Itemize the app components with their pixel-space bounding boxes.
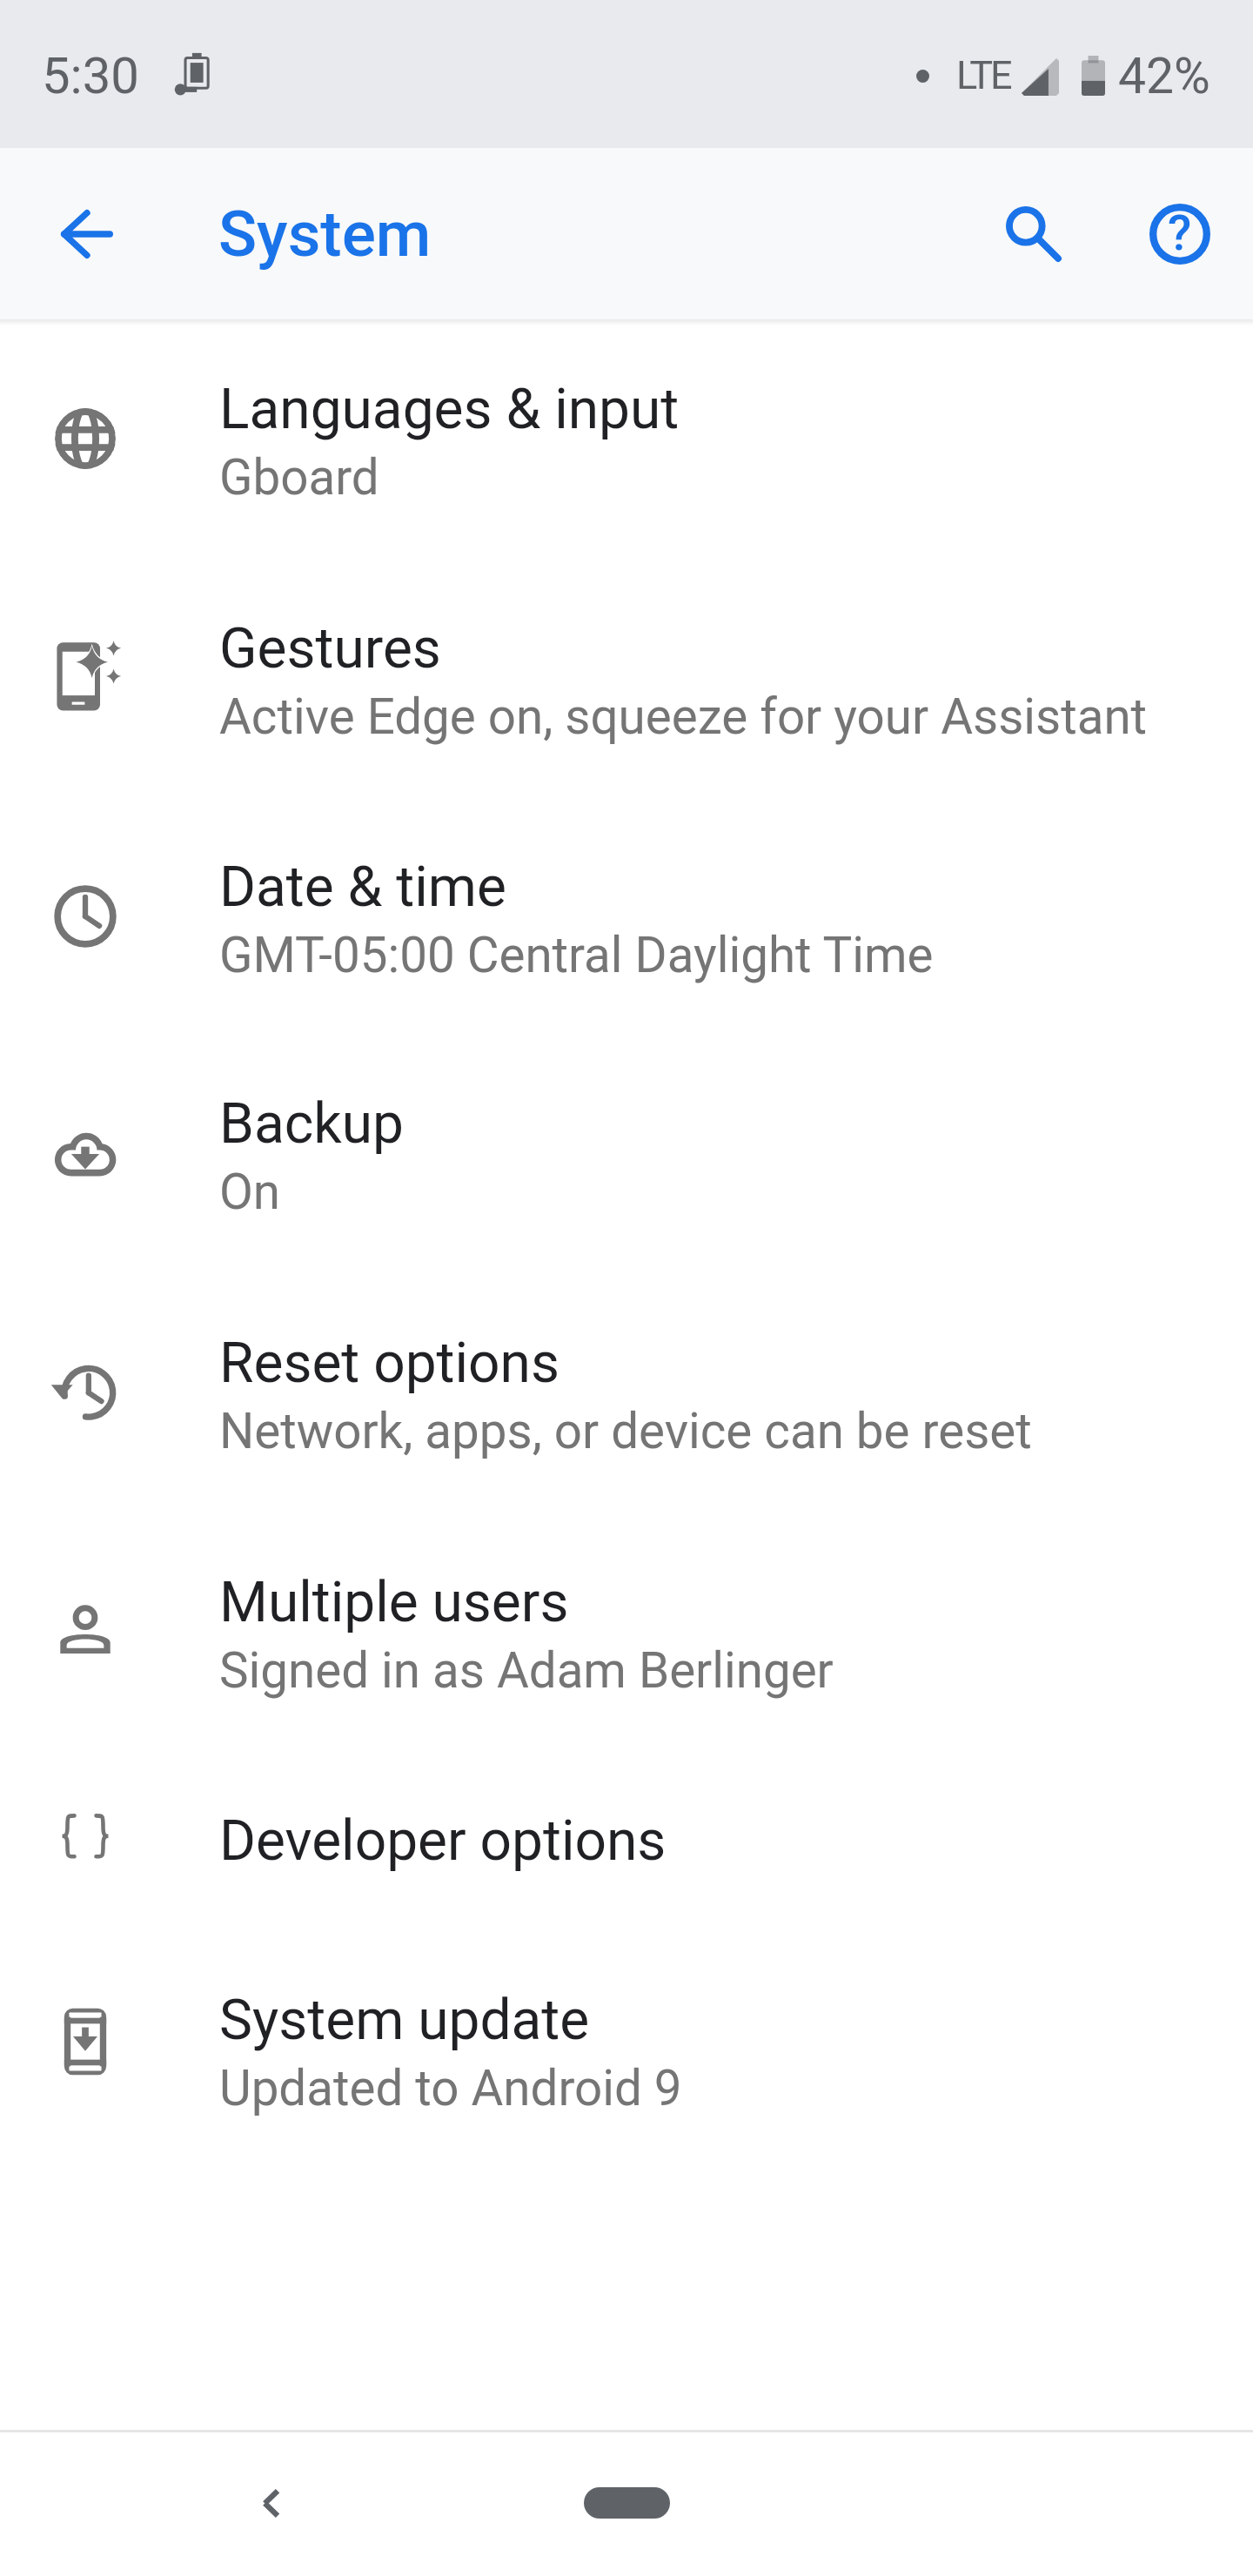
button[interactable]: Home: [548, 2457, 705, 2553]
staticText: ?: [1168, 205, 1192, 262]
button[interactable]: Backup: [0, 1034, 1253, 1273]
staticText: Date & time: [219, 855, 506, 920]
button[interactable]: Gestures: [0, 559, 1253, 797]
button[interactable]: Languages & input: [0, 319, 1253, 559]
button[interactable]: Multiple users: [0, 1513, 1253, 1751]
button[interactable]: Help: [1116, 171, 1243, 298]
staticText: Gestures: [219, 616, 441, 681]
staticText: Gboard: [219, 449, 379, 506]
staticText: System: [218, 197, 432, 272]
staticText: Signed in as Adam Berlinger: [219, 1642, 834, 1700]
staticText: Developer options: [219, 1808, 667, 1874]
staticText: Updated to Android 9: [219, 2060, 682, 2117]
button[interactable]: Reset options: [0, 1273, 1253, 1513]
staticText: GMT-05:00 Central Daylight Time: [219, 927, 934, 984]
staticText: System update: [219, 1988, 590, 2053]
staticText: Languages & input: [219, 377, 680, 442]
button[interactable]: Search: [970, 171, 1097, 298]
button[interactable]: Navigate up: [23, 171, 151, 298]
staticText: 5:30: [42, 46, 139, 105]
staticText: 42%: [1118, 47, 1210, 105]
staticText: Multiple users: [219, 1570, 569, 1635]
staticText: Backup: [219, 1091, 404, 1157]
staticText: Network, apps, or device can be reset: [219, 1403, 1032, 1460]
staticText: Active Edge on, squeeze for your Assista…: [219, 688, 1148, 746]
button[interactable]: Developer options: [0, 1751, 1253, 1930]
button[interactable]: Date & time: [0, 797, 1253, 1034]
button[interactable]: System update: [0, 1930, 1253, 2170]
staticText: Reset options: [219, 1331, 559, 1396]
staticText: LTE: [956, 52, 1010, 98]
button[interactable]: Back: [207, 2441, 334, 2568]
staticText: On: [219, 1164, 281, 1221]
